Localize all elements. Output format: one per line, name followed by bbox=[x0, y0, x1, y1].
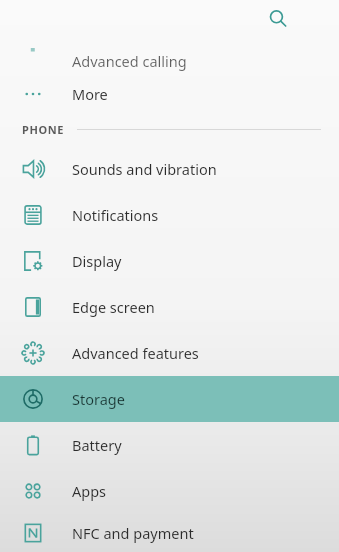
button[interactable]: Advanced calling bbox=[0, 38, 339, 60]
button[interactable]: Search bbox=[261, 2, 295, 36]
staticText: Apps bbox=[72, 481, 107, 501]
button[interactable]: Apps bbox=[0, 468, 339, 514]
staticText: Advanced features bbox=[72, 343, 199, 363]
button[interactable]: Storage bbox=[0, 376, 339, 422]
button[interactable]: Sounds and vibration bbox=[0, 146, 339, 192]
staticText: More bbox=[72, 84, 108, 104]
button[interactable]: Display bbox=[0, 238, 339, 284]
button[interactable]: Battery bbox=[0, 422, 339, 468]
button[interactable]: NFC and payment bbox=[0, 514, 339, 552]
staticText: Battery bbox=[72, 435, 122, 455]
button[interactable]: Edge screen bbox=[0, 284, 339, 330]
staticText: Edge screen bbox=[72, 297, 155, 317]
staticText: NFC and payment bbox=[72, 523, 194, 543]
button[interactable]: More bbox=[0, 74, 339, 114]
staticText: Notifications bbox=[72, 205, 159, 225]
staticText: PHONE bbox=[22, 122, 65, 137]
staticText: Advanced calling bbox=[72, 51, 187, 71]
staticText: Storage bbox=[72, 389, 125, 409]
button[interactable]: Notifications bbox=[0, 192, 339, 238]
staticText: Sounds and vibration bbox=[72, 159, 217, 179]
staticText: Display bbox=[72, 251, 122, 271]
button[interactable]: Advanced features bbox=[0, 330, 339, 376]
